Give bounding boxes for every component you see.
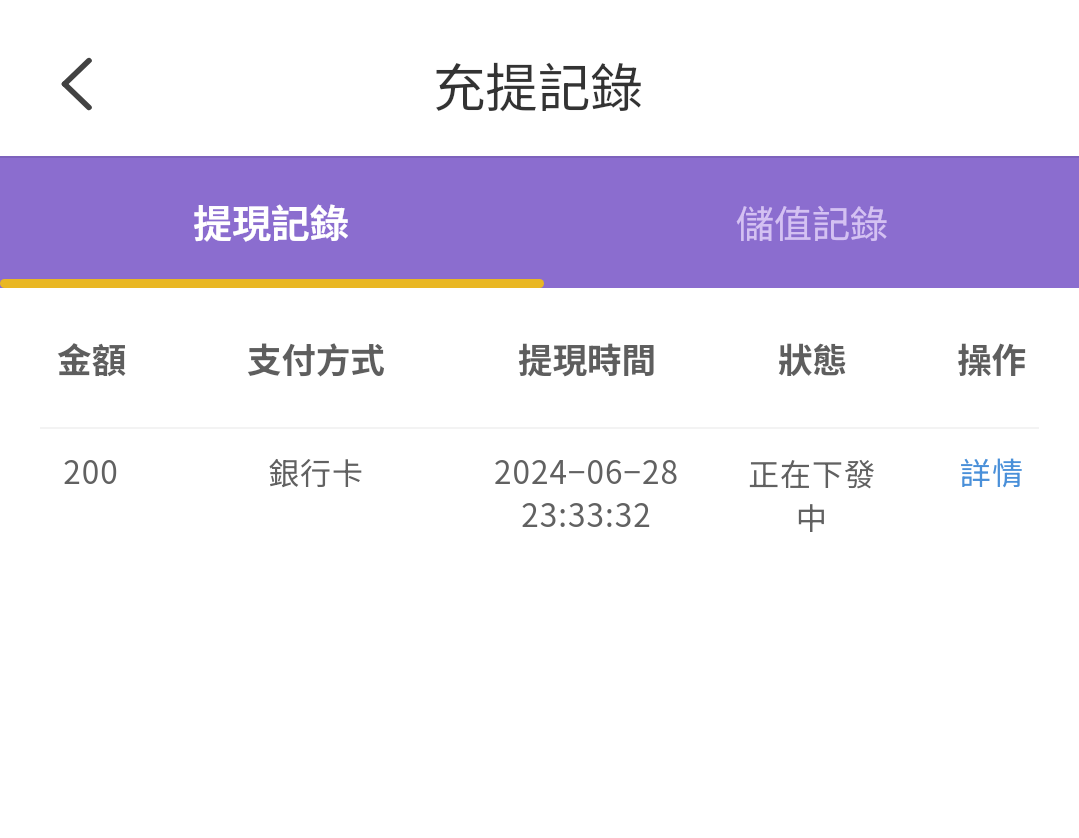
staticText: 支付方式	[247, 333, 385, 383]
staticText: 操作	[957, 333, 1026, 383]
staticText: 詳情	[960, 449, 1024, 494]
staticText: 提現時間	[518, 333, 656, 383]
button[interactable]: 儲值記錄	[542, 156, 1079, 288]
button[interactable]: 詳情	[900, 447, 1079, 492]
staticText: 銀行卡	[268, 449, 364, 494]
staticText: 正在下發中	[738, 450, 886, 539]
staticText: 狀態	[778, 333, 847, 383]
staticText: 儲值記錄	[736, 194, 889, 249]
staticText: 2024−06−28 23:33:32	[463, 447, 710, 536]
staticText: 提現記錄	[193, 193, 350, 249]
button[interactable]: 提現記錄	[0, 156, 542, 288]
staticText: 200	[63, 447, 119, 493]
staticText: 充提記錄	[433, 46, 644, 122]
button[interactable]: Back	[32, 33, 122, 123]
staticText: 金額	[57, 333, 126, 383]
